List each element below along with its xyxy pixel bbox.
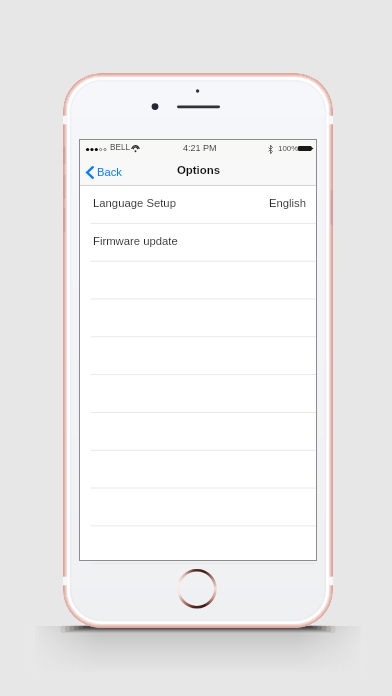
staticText: BELL	[110, 143, 131, 152]
button[interactable]: Firmware update	[80, 224, 316, 262]
staticText: English	[269, 197, 307, 210]
staticText: Firmware update	[93, 235, 178, 248]
other: Back	[86, 166, 94, 179]
staticText: Options	[177, 164, 221, 177]
staticText: Language Setup	[93, 197, 176, 210]
button[interactable]: Back	[80, 161, 130, 184]
staticText: 4:21 PM	[183, 143, 217, 153]
button[interactable]: Language Setup	[80, 186, 316, 224]
staticText: 100%	[278, 144, 299, 153]
staticText: Back	[97, 166, 122, 179]
